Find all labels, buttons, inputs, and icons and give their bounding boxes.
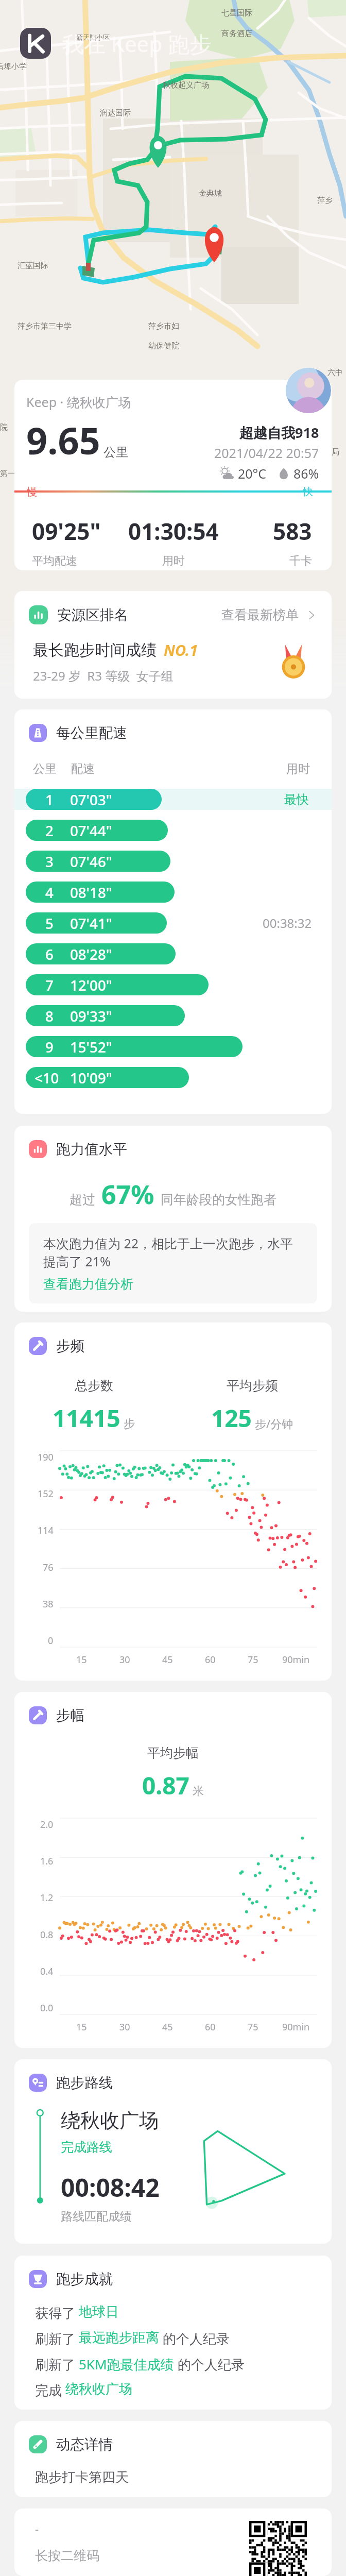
staticText: 每公里配速 xyxy=(56,724,127,742)
staticText: 步幅 xyxy=(56,1706,85,1724)
staticText: 90min xyxy=(282,1653,310,1666)
staticText: 60 xyxy=(205,1653,216,1666)
staticText: 萍乡市第三中学 xyxy=(18,321,72,331)
staticText: 完成路线 xyxy=(61,2139,112,2155)
other: QR code xyxy=(249,2521,307,2564)
staticText: 3 xyxy=(45,852,86,871)
staticText: 1.2 xyxy=(40,1891,54,1904)
staticText: 60 xyxy=(205,2021,216,2033)
button[interactable]: 安源区排名 xyxy=(14,591,332,628)
staticText: 8 xyxy=(45,1006,86,1026)
staticText: 总步数 xyxy=(75,1378,113,1394)
staticText: 30 xyxy=(119,1653,130,1666)
staticText: 10'09" xyxy=(70,1068,112,1088)
staticText: 7 xyxy=(45,975,86,995)
staticText: 刷新了 xyxy=(35,2329,79,2348)
staticText: 2 xyxy=(45,821,86,840)
staticText: 11415 xyxy=(53,1402,120,1434)
staticText: 用时 xyxy=(286,761,310,776)
staticText: 5 xyxy=(45,913,86,933)
staticText: 萍乡市妇 xyxy=(148,321,179,331)
staticText: 平均步频 xyxy=(227,1378,278,1394)
staticText: 步/分钟 xyxy=(255,1416,293,1431)
staticText: 用时 xyxy=(162,554,185,568)
staticText: 23-29 岁 R3 等级 女子组 xyxy=(33,667,174,684)
staticText: 完成 xyxy=(35,2381,65,2399)
staticText: 09'25" xyxy=(32,516,101,547)
staticText: 配速 xyxy=(71,761,95,776)
staticText: 45 xyxy=(162,2021,173,2033)
staticText: 20°C xyxy=(238,465,267,482)
staticText: 米 xyxy=(193,1784,204,1799)
staticText: NO.1 xyxy=(164,640,198,660)
staticText: 局 xyxy=(332,447,339,457)
staticText: 金典城 xyxy=(199,189,222,198)
staticText: 0.0 xyxy=(40,2002,54,2014)
staticText: 润达国际 xyxy=(100,108,131,118)
staticText: 获得了 xyxy=(35,2303,79,2322)
staticText: <10 xyxy=(34,1068,76,1088)
staticText: 最长跑步时间成绩 xyxy=(33,640,157,660)
staticText: 1 xyxy=(45,790,86,809)
staticText: 86% xyxy=(293,465,319,482)
staticText: 跑步打卡第四天 xyxy=(35,2469,129,2486)
staticText: 刷新了 xyxy=(35,2355,79,2374)
staticText: 190 xyxy=(38,1451,54,1464)
staticText: 00:38:32 xyxy=(263,914,312,931)
staticText: 152 xyxy=(38,1487,54,1500)
staticText: 45 xyxy=(162,1653,173,1666)
staticText: 的个人纪录 xyxy=(174,2355,245,2374)
staticText: 0 xyxy=(48,1634,54,1647)
staticText: 幼保健院 xyxy=(148,341,179,351)
staticText: 2.0 xyxy=(40,1818,54,1831)
staticText: 00:08:42 xyxy=(61,2171,160,2204)
staticText: 最快 xyxy=(284,792,309,807)
staticText: 的个人纪录 xyxy=(159,2329,230,2348)
staticText: Keep · 绕秋收广场 xyxy=(26,393,131,411)
staticText: 01:30:54 xyxy=(128,516,219,547)
staticText: 5KM跑最佳成绩 xyxy=(79,2355,174,2374)
staticText: 汇蓝国际 xyxy=(18,261,48,270)
staticText: 跑步路线 xyxy=(56,2074,113,2092)
staticText: 38 xyxy=(43,1598,54,1611)
staticText: 慢 xyxy=(27,485,37,498)
staticText: 跑步成就 xyxy=(56,2270,113,2288)
staticText: 公里 xyxy=(103,445,128,460)
staticText: 07'03" xyxy=(70,790,112,809)
staticText: 125 xyxy=(211,1402,252,1434)
staticText: 最远跑步距离 xyxy=(79,2329,159,2346)
staticText: 秋收起义广场 xyxy=(163,80,209,90)
staticText: 4 xyxy=(45,883,86,902)
staticText: 快 xyxy=(303,485,313,498)
staticText: 75 xyxy=(248,1653,258,1666)
staticText: 绕秋收广场 xyxy=(61,2108,159,2133)
staticText: 超越自我918 xyxy=(239,423,319,442)
staticText: 0.87 xyxy=(142,1769,189,1802)
staticText: 9 xyxy=(45,1037,86,1057)
staticText: 12'00" xyxy=(70,975,112,995)
staticText: 583 xyxy=(273,516,312,547)
staticText: 超过 xyxy=(70,1192,95,1208)
button[interactable]: 本次跑力值为 22，相比于上一次跑步，水平提高了 21% xyxy=(29,1223,317,1303)
staticText: 平均配速 xyxy=(32,554,77,568)
staticText: 第一 xyxy=(0,469,15,479)
staticText: 七星国际 xyxy=(221,8,252,18)
staticText: 15 xyxy=(76,2021,87,2033)
staticText: 动态详情 xyxy=(56,2435,113,2453)
staticText: 30 xyxy=(119,2021,130,2033)
staticText: 商务酒店 xyxy=(221,29,252,39)
staticText: 查看最新榜单 xyxy=(221,607,299,623)
staticText: 绕秋收广场 xyxy=(65,2381,132,2398)
staticText: 08'18" xyxy=(70,883,112,902)
staticText: 6 xyxy=(45,944,86,964)
staticText: 安源区排名 xyxy=(57,606,128,624)
staticText: 步频 xyxy=(56,1337,85,1355)
staticText: 90min xyxy=(282,2021,310,2033)
staticText: 07'44" xyxy=(70,821,112,840)
staticText: 15 xyxy=(76,1653,87,1666)
staticText: 同年龄段的女性跑者 xyxy=(161,1192,276,1208)
staticText: 长按二维码 xyxy=(35,2548,99,2564)
staticText: 76 xyxy=(43,1561,54,1574)
staticText: 地球日 xyxy=(79,2303,119,2320)
staticText: 07'46" xyxy=(70,852,112,871)
